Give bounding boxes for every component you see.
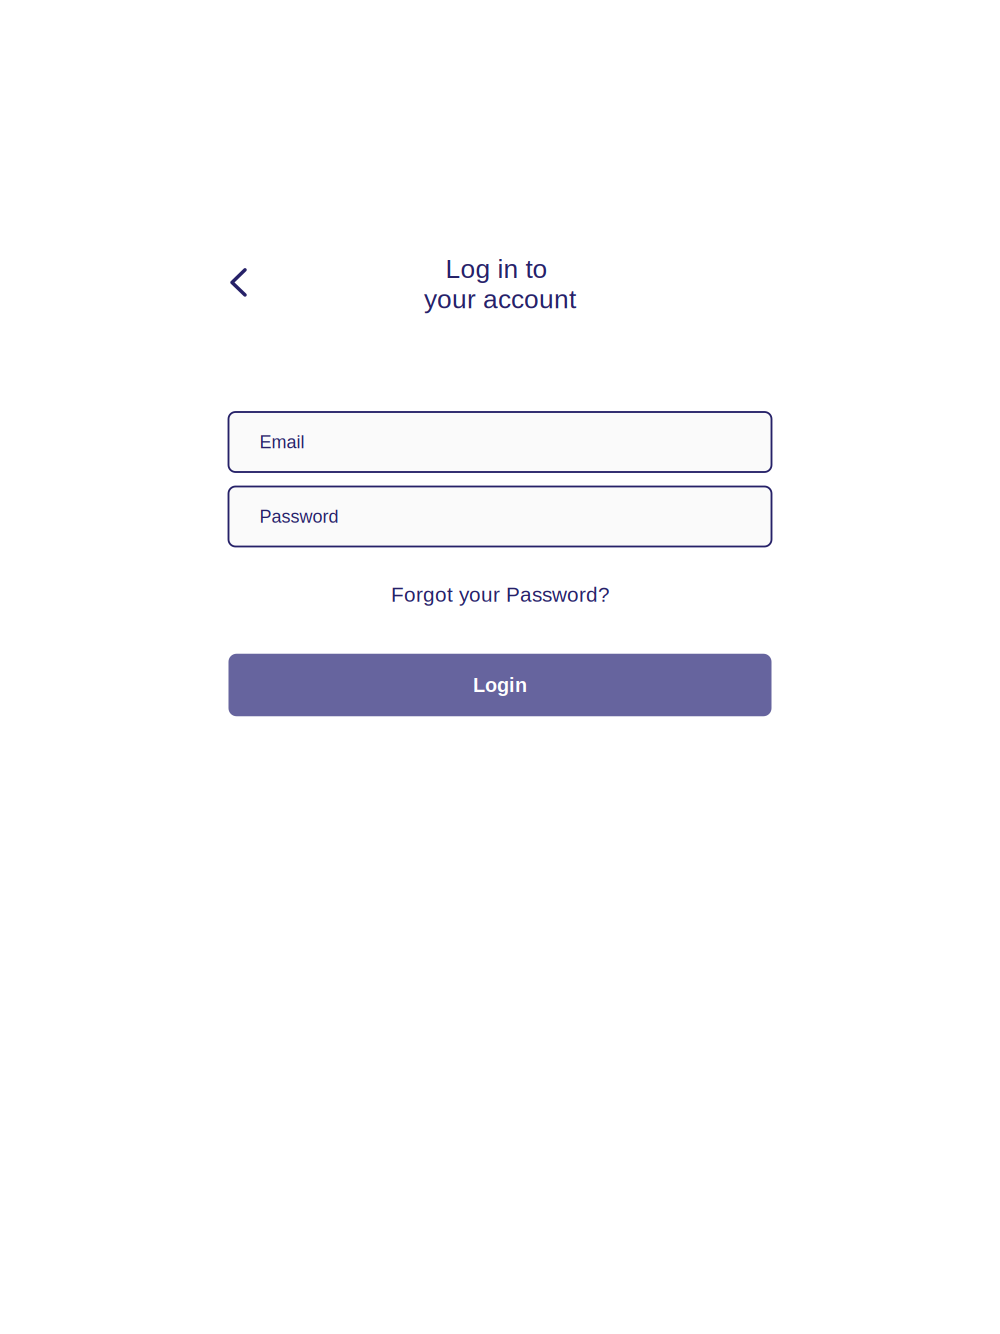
button[interactable]: Email	[228, 412, 771, 472]
staticText: Login	[473, 674, 527, 696]
staticText: Email	[259, 432, 304, 452]
button[interactable]: Back	[207, 251, 269, 313]
staticText: your account	[424, 284, 576, 314]
staticText: Password	[259, 506, 338, 526]
staticText: Forgot your Password?	[391, 583, 610, 606]
staticText: Log in to	[445, 254, 547, 283]
button[interactable]: Login	[228, 654, 771, 716]
button[interactable]: Password	[228, 486, 771, 546]
button[interactable]: Forgot your Password?	[351, 572, 651, 616]
